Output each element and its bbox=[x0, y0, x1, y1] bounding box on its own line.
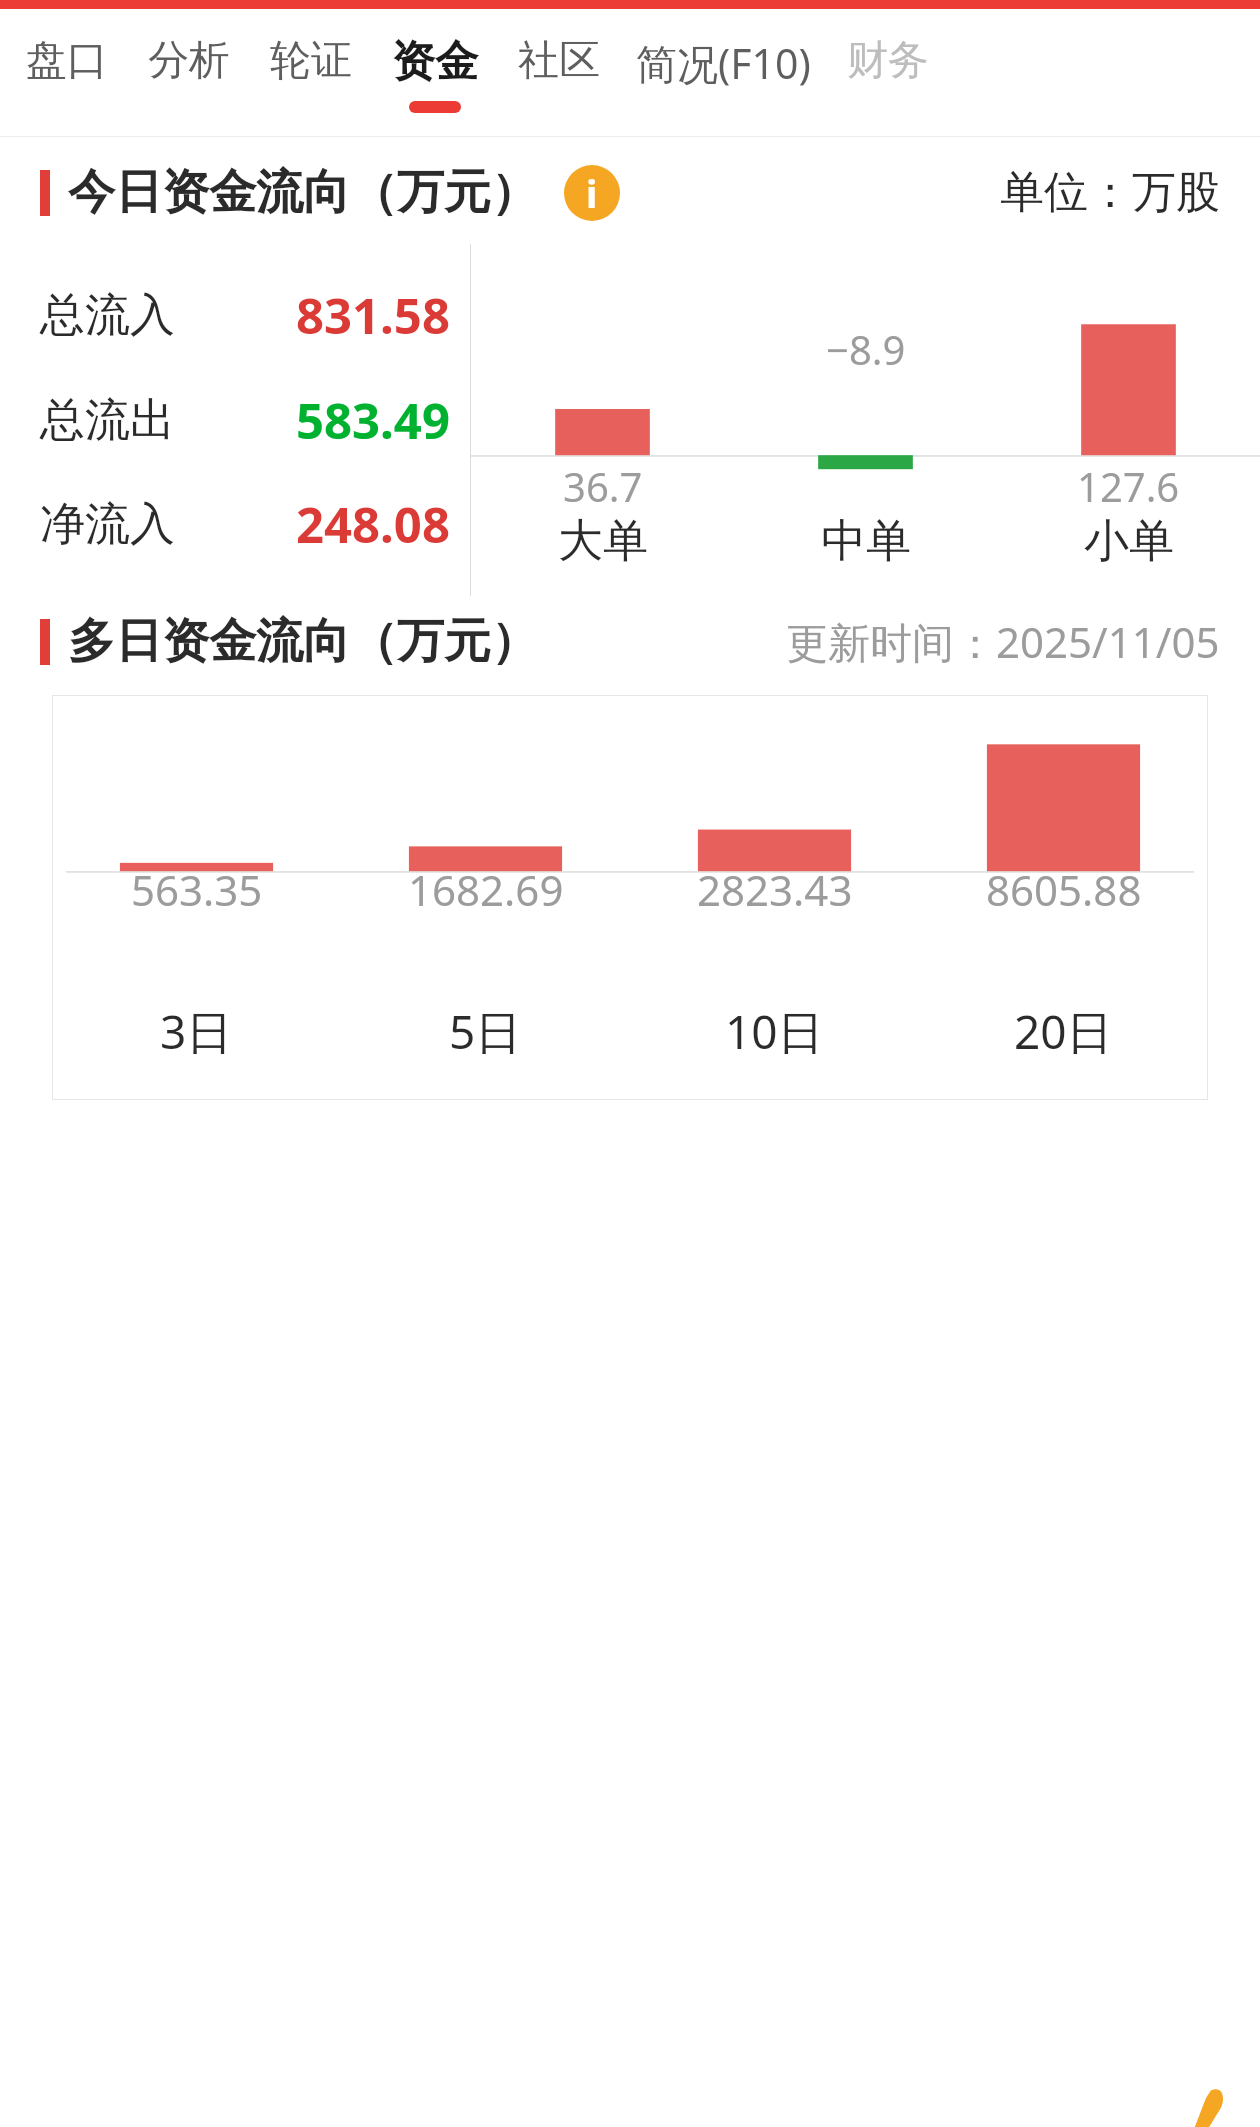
staticText: −8.9 bbox=[826, 322, 906, 376]
staticText: 8605.88 bbox=[986, 861, 1142, 918]
staticText: 127.6 bbox=[1077, 459, 1180, 513]
staticText: 248.08 bbox=[296, 491, 450, 558]
button[interactable]: 3日 bbox=[52, 1000, 341, 1063]
staticText: 1682.69 bbox=[408, 861, 564, 918]
staticText: 轮证 bbox=[270, 35, 352, 87]
button[interactable]: 说明 bbox=[564, 165, 620, 221]
button[interactable]: 10日 bbox=[630, 1000, 919, 1063]
staticText: 831.58 bbox=[296, 282, 450, 349]
button[interactable]: 简况(F10) bbox=[636, 9, 811, 136]
staticText: 今日资金流向（万元） bbox=[68, 163, 538, 222]
staticText: 583.49 bbox=[296, 387, 450, 454]
staticText: 盘口 bbox=[26, 35, 108, 87]
staticText: 单位：万股 bbox=[1000, 165, 1220, 220]
button[interactable]: 资金 bbox=[392, 9, 478, 136]
button[interactable]: 分析 bbox=[148, 9, 230, 136]
staticText: 36.7 bbox=[563, 459, 643, 513]
button[interactable]: 盘口 bbox=[26, 9, 108, 136]
button[interactable]: 5日 bbox=[341, 1000, 630, 1063]
button[interactable]: 20日 bbox=[919, 1000, 1208, 1063]
button[interactable]: 轮证 bbox=[270, 9, 352, 136]
staticText: 总流入 bbox=[40, 287, 175, 344]
staticText: 社区 bbox=[518, 35, 600, 87]
button[interactable]: 财务 bbox=[847, 9, 929, 136]
staticText: 资金 bbox=[392, 35, 478, 89]
staticText: 中单 bbox=[821, 513, 911, 570]
staticText: 563.35 bbox=[131, 861, 263, 918]
staticText: 多日资金流向（万元） bbox=[68, 612, 538, 671]
staticText: 更新时间：2025/11/05 bbox=[786, 613, 1220, 670]
staticText: 大单 bbox=[558, 513, 648, 570]
staticText: 小单 bbox=[1084, 513, 1174, 570]
staticText: 3日 bbox=[160, 1000, 233, 1063]
staticText: 20日 bbox=[1014, 1000, 1113, 1063]
staticText: 5日 bbox=[449, 1000, 522, 1063]
staticText: 10日 bbox=[725, 1000, 824, 1063]
button[interactable]: 社区 bbox=[518, 9, 600, 136]
staticText: i bbox=[586, 167, 598, 219]
staticText: 2823.43 bbox=[697, 861, 853, 918]
staticText: 财务 bbox=[847, 35, 929, 87]
staticText: 净流入 bbox=[40, 496, 175, 553]
staticText: 分析 bbox=[148, 35, 230, 87]
staticText: 总流出 bbox=[40, 392, 175, 449]
staticText: 简况(F10) bbox=[636, 35, 811, 91]
